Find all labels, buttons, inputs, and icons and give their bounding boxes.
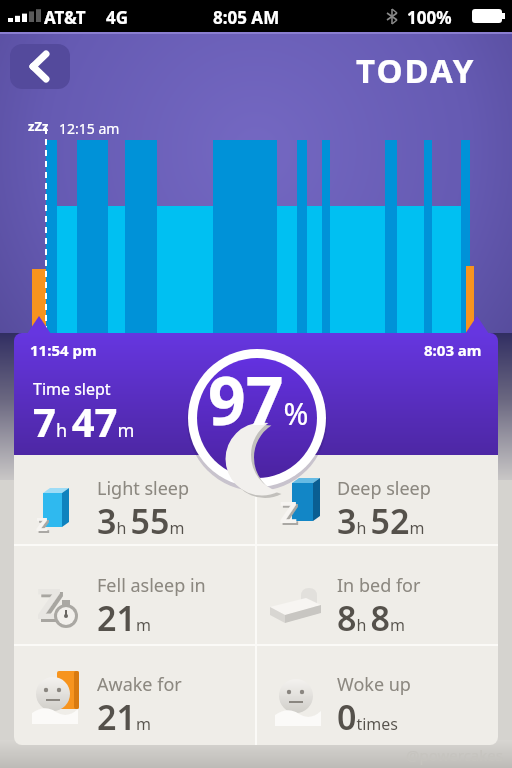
staticText: In bed for: [337, 573, 421, 598]
staticText: 12:15 am: [59, 119, 120, 138]
staticText: 97%: [208, 354, 309, 444]
button[interactable]: [257, 646, 498, 745]
staticText: 11:54 pm: [30, 340, 97, 360]
staticText: 100%: [407, 6, 452, 29]
staticText: @powercakes: [406, 745, 503, 765]
button[interactable]: [257, 546, 498, 644]
staticText: zZz: [28, 117, 49, 135]
staticText: 7h 47m: [33, 394, 135, 448]
staticText: 0times: [337, 694, 399, 740]
staticText: Z: [280, 492, 297, 531]
button[interactable]: [257, 455, 498, 545]
staticText: 21m: [97, 595, 151, 641]
staticText: Fell asleep in: [97, 573, 206, 598]
staticText: Z: [282, 494, 299, 533]
staticText: Time slept: [33, 378, 111, 400]
staticText: Woke up: [337, 672, 411, 697]
staticText: TODAY: [356, 48, 476, 84]
button[interactable]: [10, 44, 70, 89]
staticText: z: [36, 505, 48, 538]
staticText: 3h 52m: [337, 498, 425, 544]
staticText: z: [38, 507, 50, 540]
button[interactable]: [14, 546, 255, 644]
staticText: Light sleep: [97, 476, 190, 501]
staticText: 3h 55m: [97, 498, 185, 544]
staticText: 8:05 AM: [213, 6, 280, 29]
staticText: Awake for: [97, 672, 182, 697]
button[interactable]: TODAY: [330, 48, 490, 84]
staticText: Z: [40, 577, 65, 634]
staticText: AT&T: [44, 6, 86, 29]
staticText: 21m: [97, 694, 151, 740]
staticText: 8h 8m: [337, 595, 405, 641]
staticText: 8:03 am: [424, 340, 482, 360]
button[interactable]: [14, 646, 255, 745]
staticText: Z: [37, 574, 62, 631]
staticText: 4G: [106, 6, 129, 29]
button[interactable]: [14, 455, 255, 545]
staticText: Deep sleep: [337, 476, 431, 501]
